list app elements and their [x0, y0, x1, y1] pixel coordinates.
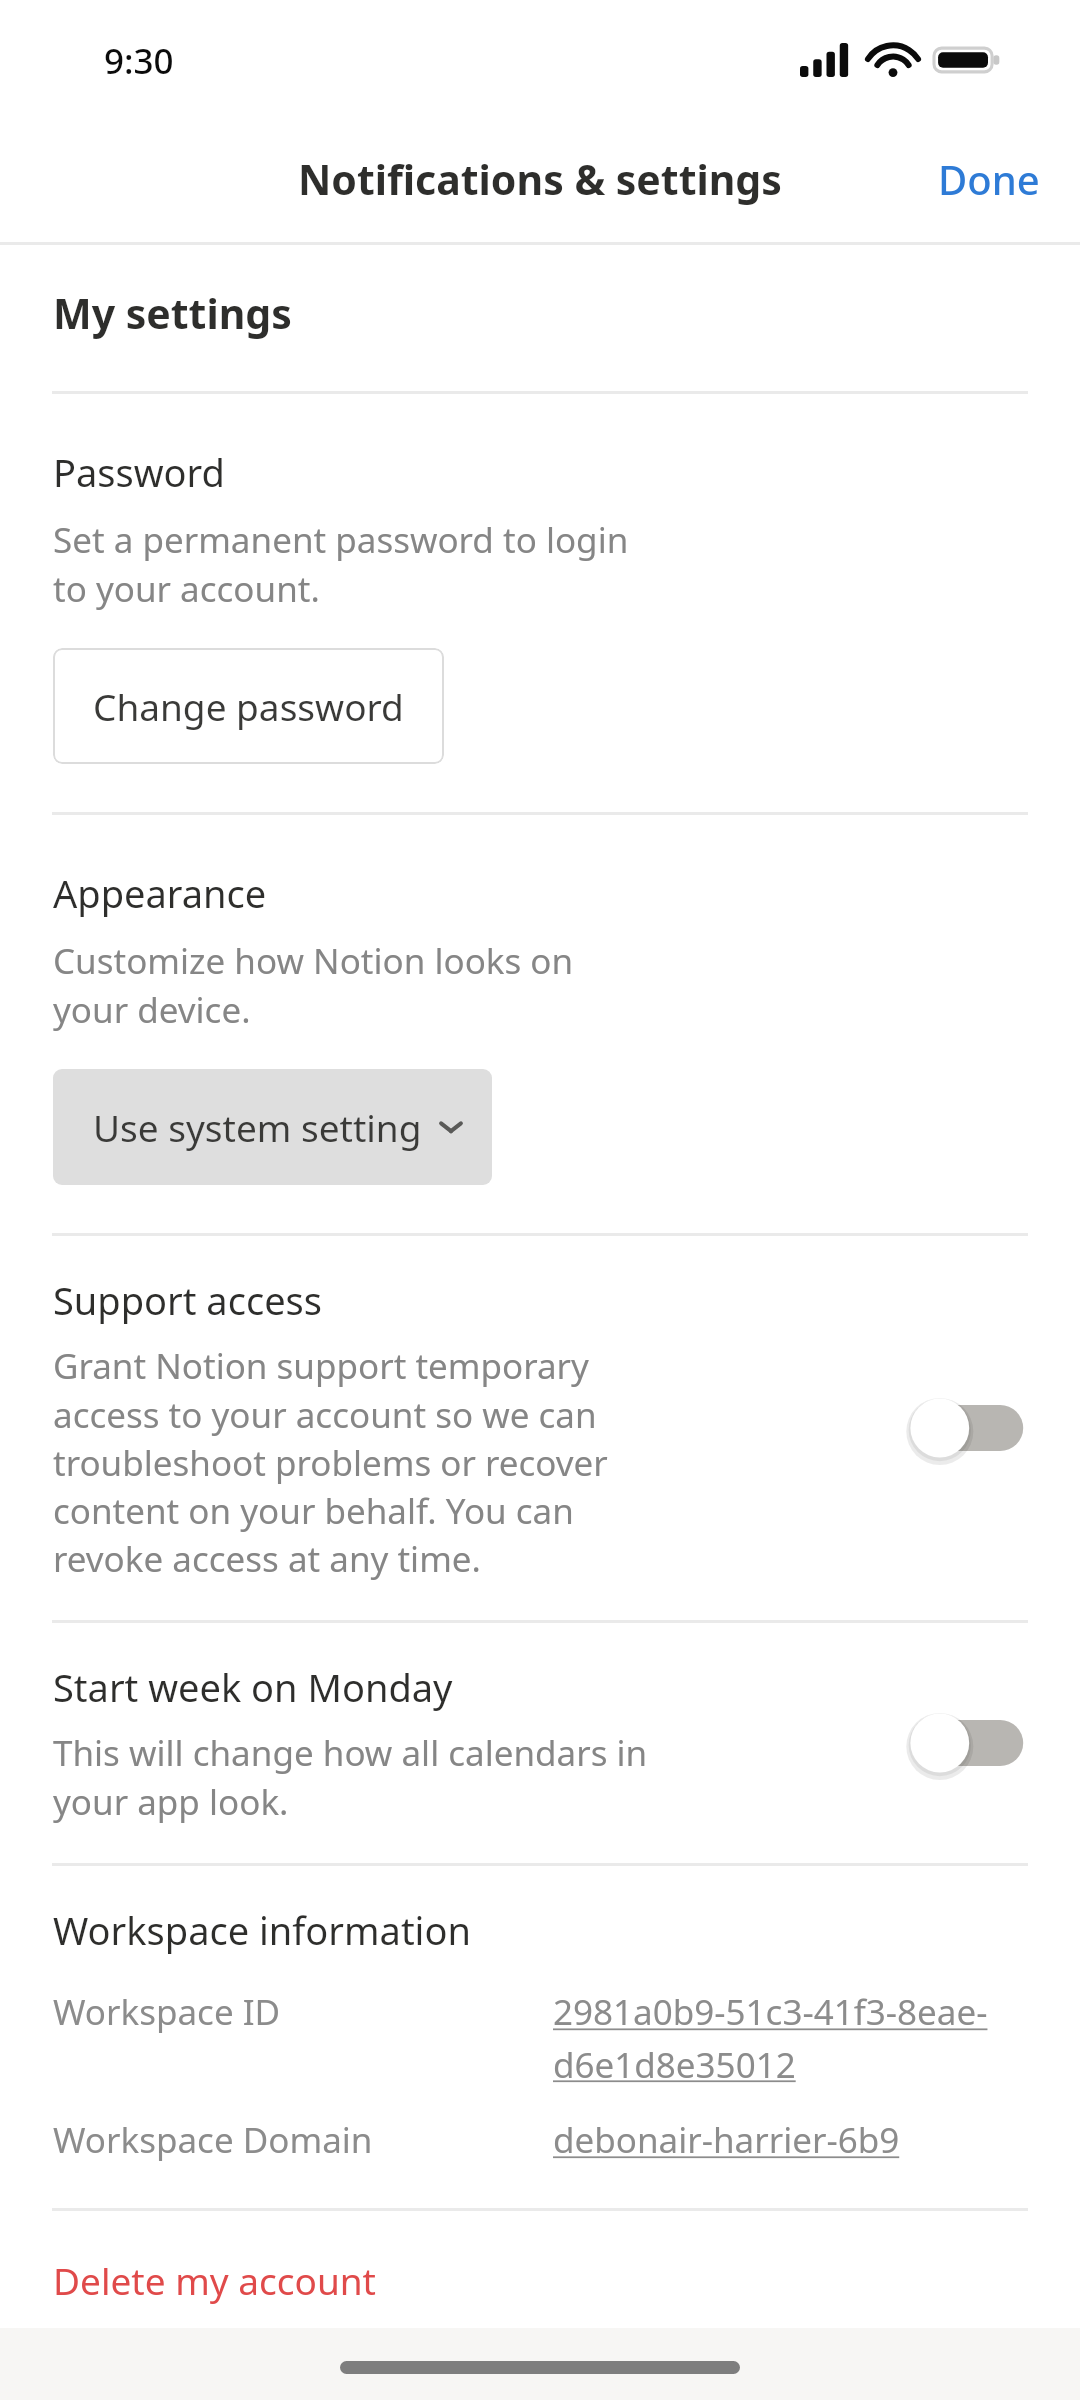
- staticText: 9:30: [104, 37, 174, 85]
- button[interactable]: Done: [898, 134, 1080, 224]
- staticText: Change password: [93, 681, 404, 731]
- button[interactable]: Workspace Domain: [0, 2116, 1080, 2164]
- staticText: Set a permanent password to login to you…: [53, 516, 629, 612]
- staticText: Workspace information: [53, 1904, 471, 1956]
- staticText: Workspace Domain: [53, 2116, 553, 2164]
- staticText: Workspace ID: [53, 1988, 553, 2036]
- button[interactable]: Toggle: [908, 1393, 1028, 1463]
- staticText: My settings: [53, 285, 292, 341]
- staticText: Grant Notion support temporary access to…: [53, 1342, 608, 1582]
- button[interactable]: Toggle: [908, 1708, 1028, 1778]
- button[interactable]: Use system setting: [53, 1069, 492, 1185]
- button[interactable]: Start week on Monday: [0, 1661, 1080, 1825]
- staticText: Password: [53, 446, 225, 498]
- button[interactable]: Change password: [53, 648, 444, 764]
- staticText: 2981a0b9-51c3-41f3-8eae- d6e1d8e35012: [553, 1988, 988, 2088]
- staticText: Customize how Notion looks on your devic…: [53, 937, 574, 1033]
- button[interactable]: Workspace ID: [0, 1988, 1080, 2088]
- staticText: Notifications & settings: [298, 151, 782, 207]
- staticText: Start week on Monday: [53, 1661, 453, 1713]
- staticText: Use system setting: [93, 1102, 422, 1152]
- button[interactable]: Support access: [0, 1274, 1080, 1582]
- staticText: Support access: [53, 1274, 323, 1326]
- staticText: This will change how all calendars in yo…: [53, 1729, 648, 1825]
- button[interactable]: Delete my account: [53, 2255, 376, 2305]
- staticText: Done: [938, 152, 1040, 206]
- staticText: Appearance: [53, 867, 267, 919]
- staticText: debonair-harrier-6b9: [553, 2116, 900, 2164]
